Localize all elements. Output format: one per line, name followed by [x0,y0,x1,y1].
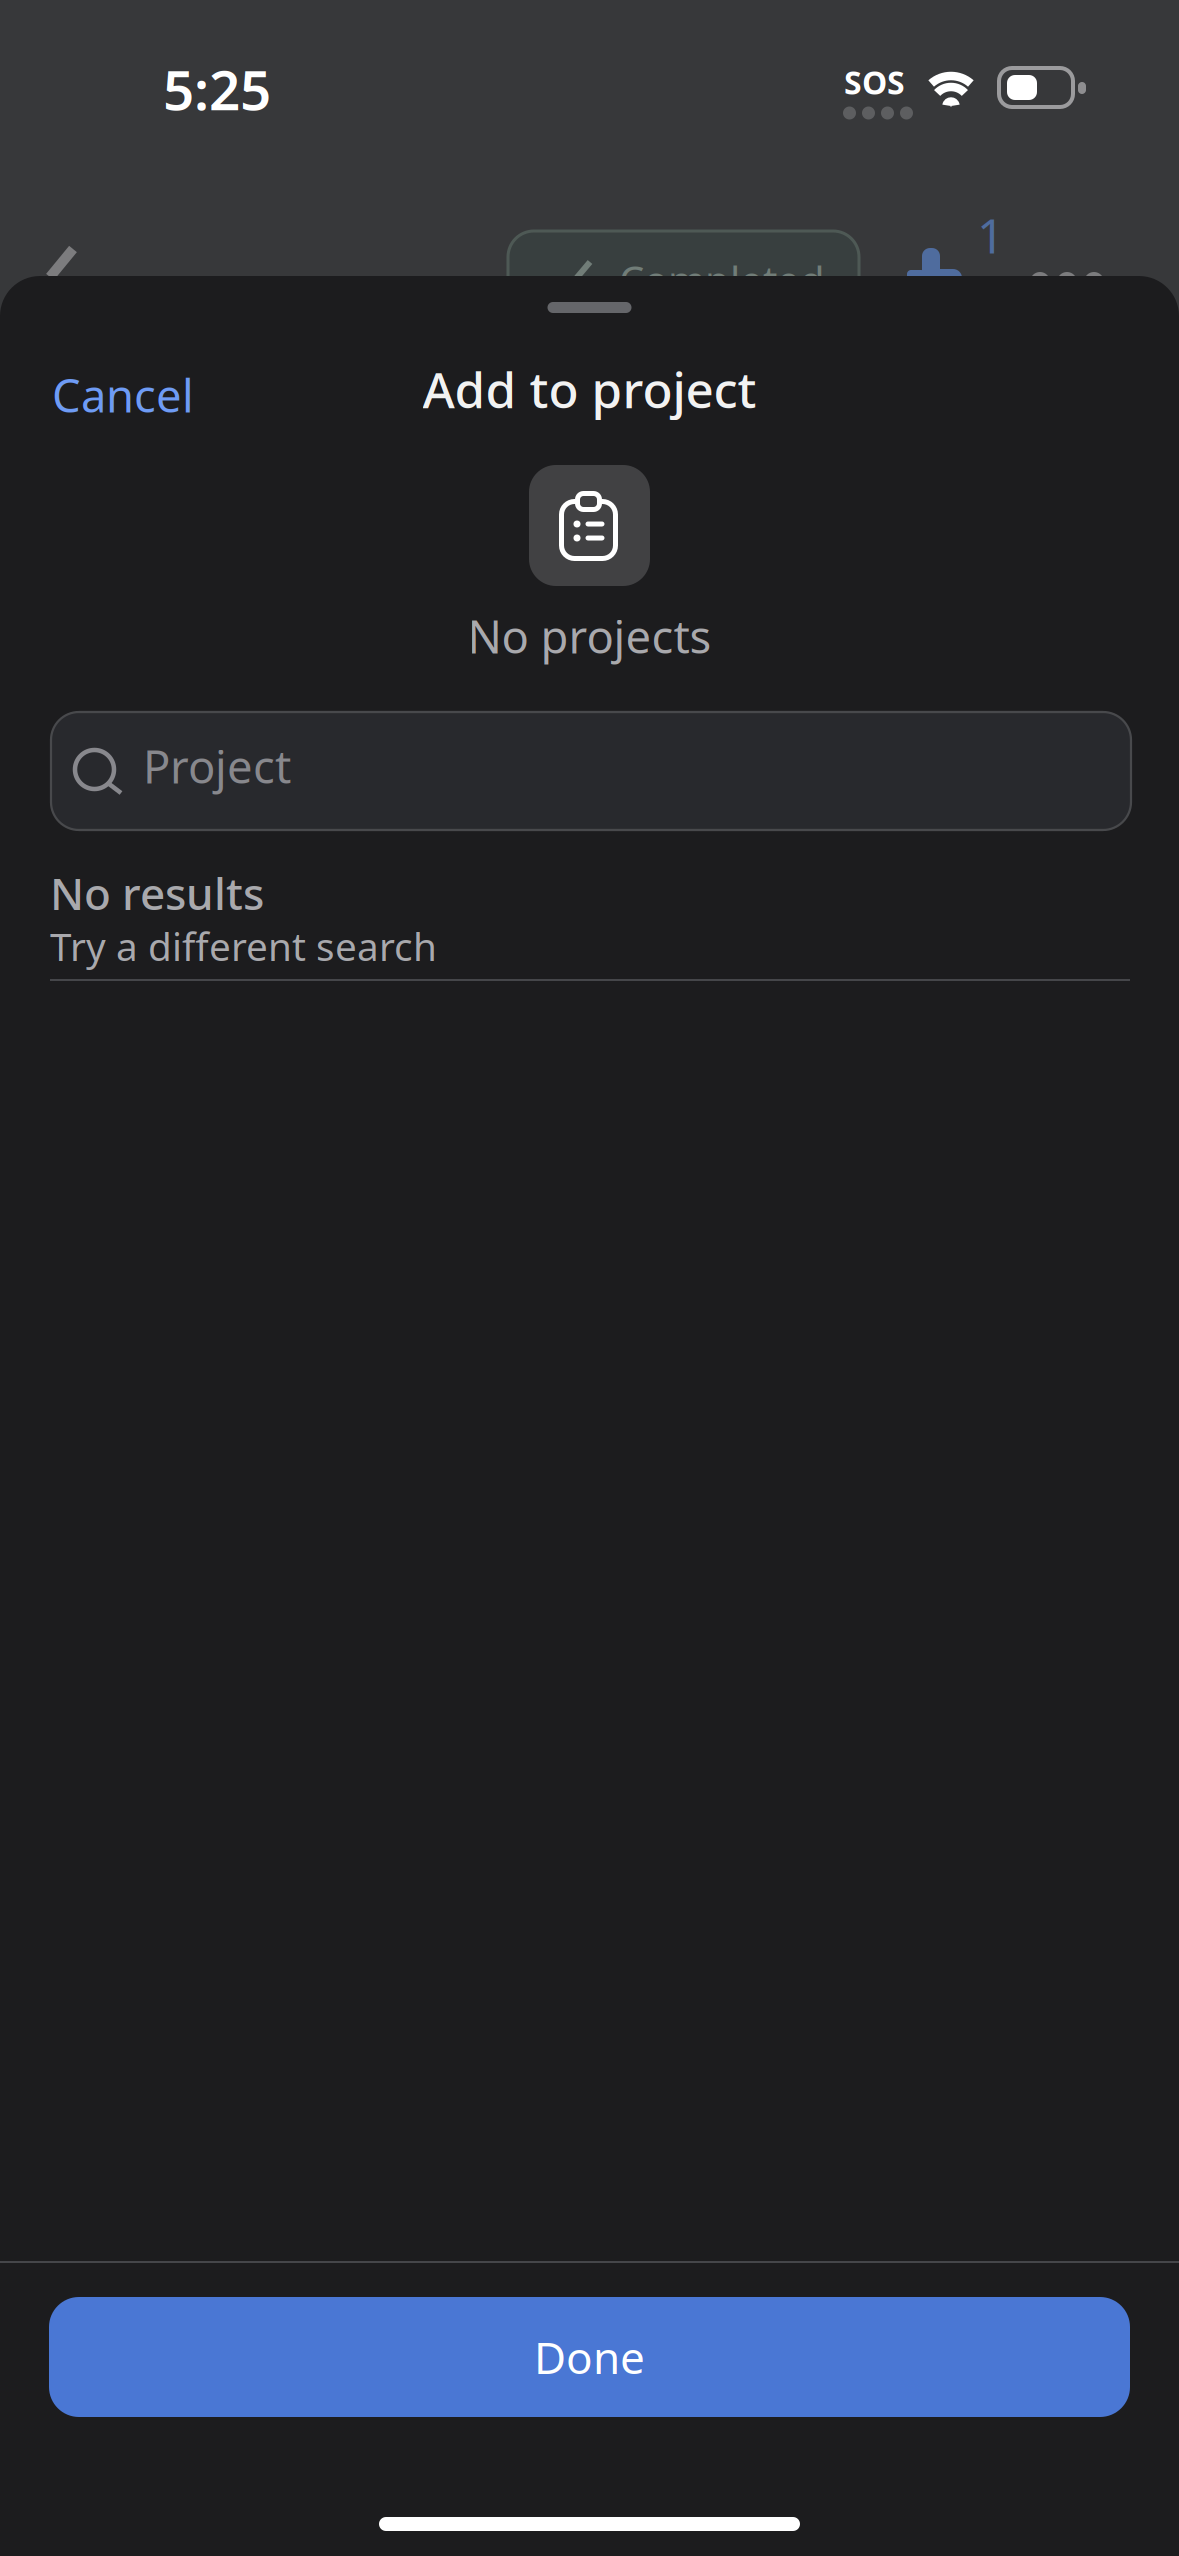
staticText: Completed [619,253,825,306]
staticText: Try a different search [50,920,437,972]
button[interactable]: Done [49,2297,1130,2417]
staticText: No results [50,864,264,922]
staticText: Project [143,736,291,796]
staticText: Done [534,2328,645,2386]
staticText: 1 [977,203,1004,267]
staticText: SOS [844,61,905,103]
button[interactable]: Cancel [52,360,372,430]
staticText: Cancel [52,365,194,425]
staticText: 5:25 [163,53,271,125]
staticText: No projects [467,606,711,666]
staticText: Add to project [422,356,756,422]
